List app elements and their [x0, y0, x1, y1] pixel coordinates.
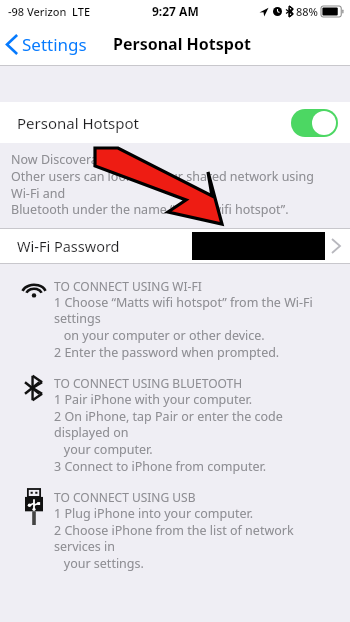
staticText: 9:27 AM [152, 3, 199, 19]
staticText: your settings. [54, 555, 144, 572]
staticText: Other users can look for your shared net… [11, 168, 336, 201]
staticText: 88% [296, 4, 318, 19]
staticText: your computer. [54, 441, 153, 458]
staticText: 2 Enter the password when prompted. [54, 344, 280, 361]
button[interactable]: Wi-Fi Password [0, 229, 350, 263]
staticText: 1 Choose “Matts wifi hotspot” from the W… [54, 294, 342, 327]
staticText: 3 Connect to iPhone from computer. [54, 458, 267, 475]
button[interactable]: Personal Hotspot on [291, 109, 338, 137]
staticText: 1 Pair iPhone with your computer. [54, 391, 253, 408]
staticText: Bluetooth under the name “Matts wifi hot… [11, 201, 289, 218]
button[interactable]: Personal Hotspot [0, 102, 350, 143]
staticText: TO CONNECT USING BLUETOOTH [54, 375, 243, 391]
staticText: Now Discoverable. [11, 151, 120, 168]
staticText: Wi-Fi Password [17, 236, 120, 256]
staticText: TO CONNECT USING USB [54, 489, 196, 505]
staticText: on your computer or other device. [54, 327, 265, 344]
staticText: 2 Choose iPhone from the list of network… [54, 522, 342, 555]
staticText: 2 On iPhone, tap Pair or enter the code … [54, 408, 342, 441]
staticText: 1 Plug iPhone into your computer. [54, 505, 254, 522]
staticText: Settings [22, 33, 87, 56]
staticText: Personal Hotspot [113, 33, 251, 55]
staticText: Personal Hotspot [17, 113, 139, 133]
staticText: TO CONNECT USING WI-FI [54, 278, 202, 294]
button[interactable]: Settings [7, 33, 87, 56]
staticText: -98 Verizon LTE [8, 4, 91, 19]
